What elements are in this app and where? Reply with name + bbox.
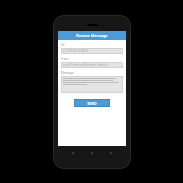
button[interactable]: Home [88,149,96,157]
staticText: +1 555 0176 0093 [63,49,88,53]
staticText: SEND [87,101,97,106]
button[interactable]: +1 555 0176 0093 [61,48,123,54]
button[interactable]: Recents [107,149,115,157]
staticText: Review Message [76,33,108,38]
staticText: Message [61,71,74,75]
button[interactable]: Review Message [58,31,126,40]
button[interactable] [61,76,123,93]
staticText: To: [61,43,66,47]
staticText: From: [61,57,70,61]
button[interactable]: SEND [74,99,110,107]
staticText: Local Store or Alternate Identity [63,63,108,67]
button[interactable]: Back [69,149,77,157]
button[interactable]: Local Store or Alternate Identity [61,62,123,68]
